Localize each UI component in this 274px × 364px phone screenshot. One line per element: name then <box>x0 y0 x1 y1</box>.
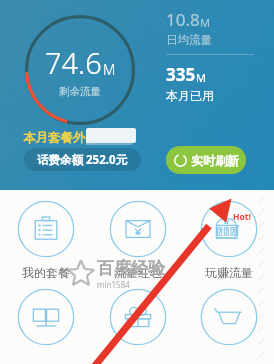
staticText: 实时刷新 <box>191 153 239 168</box>
staticText: M <box>196 70 206 85</box>
staticText: mín1584 <box>97 279 130 290</box>
button[interactable]: 我的套餐 <box>0 200 92 280</box>
staticText: 本月套餐外流 <box>23 130 98 146</box>
staticText: 335 <box>166 63 196 86</box>
staticText: 我的套餐 <box>22 265 70 280</box>
button[interactable]: 实时刷新 <box>166 146 246 174</box>
button[interactable]: 流量红包 <box>92 200 183 280</box>
staticText: M <box>200 15 210 30</box>
button[interactable]: 74.6 <box>24 14 136 126</box>
staticText: 剩余流量 <box>59 85 101 98</box>
button[interactable]: Menu item <box>92 288 183 346</box>
staticText: 本月已用 <box>166 88 214 103</box>
staticText: 玩赚流量 <box>205 265 253 280</box>
staticText: 日均流量 <box>166 33 212 47</box>
button[interactable]: 玩赚流量 <box>183 200 274 280</box>
button[interactable]: Menu item <box>183 288 274 346</box>
staticText: 10.8 <box>166 8 200 31</box>
staticText: 百度经验 <box>97 258 165 279</box>
staticText: 话费余额 252.0元 <box>37 152 128 168</box>
button[interactable]: Menu item <box>0 288 92 346</box>
staticText: 流量红包 <box>114 265 162 280</box>
staticText: 74.6 <box>45 43 102 82</box>
button[interactable]: 话费余额 252.0元 <box>24 148 141 171</box>
staticText: Hot! <box>233 211 251 223</box>
staticText: M <box>103 60 116 79</box>
